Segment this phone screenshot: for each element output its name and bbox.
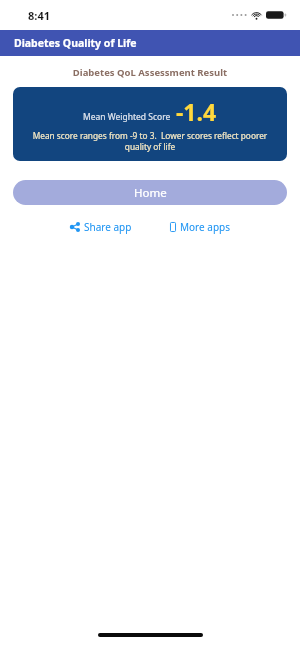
button[interactable]: Home — [13, 180, 287, 205]
staticText: 8:41 — [28, 8, 50, 23]
staticText: -1.4 — [176, 96, 217, 127]
staticText: Mean score ranges from -9 to 3. Lower sc… — [23, 130, 277, 152]
staticText: More apps — [180, 220, 230, 234]
staticText: Diabetes Quality of Life — [14, 36, 137, 50]
button[interactable]: More apps — [166, 218, 234, 236]
button[interactable]: Share app — [66, 218, 136, 236]
staticText: Diabetes QoL Assessment Result — [0, 66, 300, 79]
staticText: Mean Weighted Score — [83, 111, 171, 123]
staticText: Home — [134, 185, 167, 201]
other: More apps — [170, 222, 176, 232]
other: Share app — [70, 222, 80, 232]
button[interactable]: Mean Weighted Score — [13, 87, 287, 161]
staticText: Share app — [84, 220, 132, 234]
